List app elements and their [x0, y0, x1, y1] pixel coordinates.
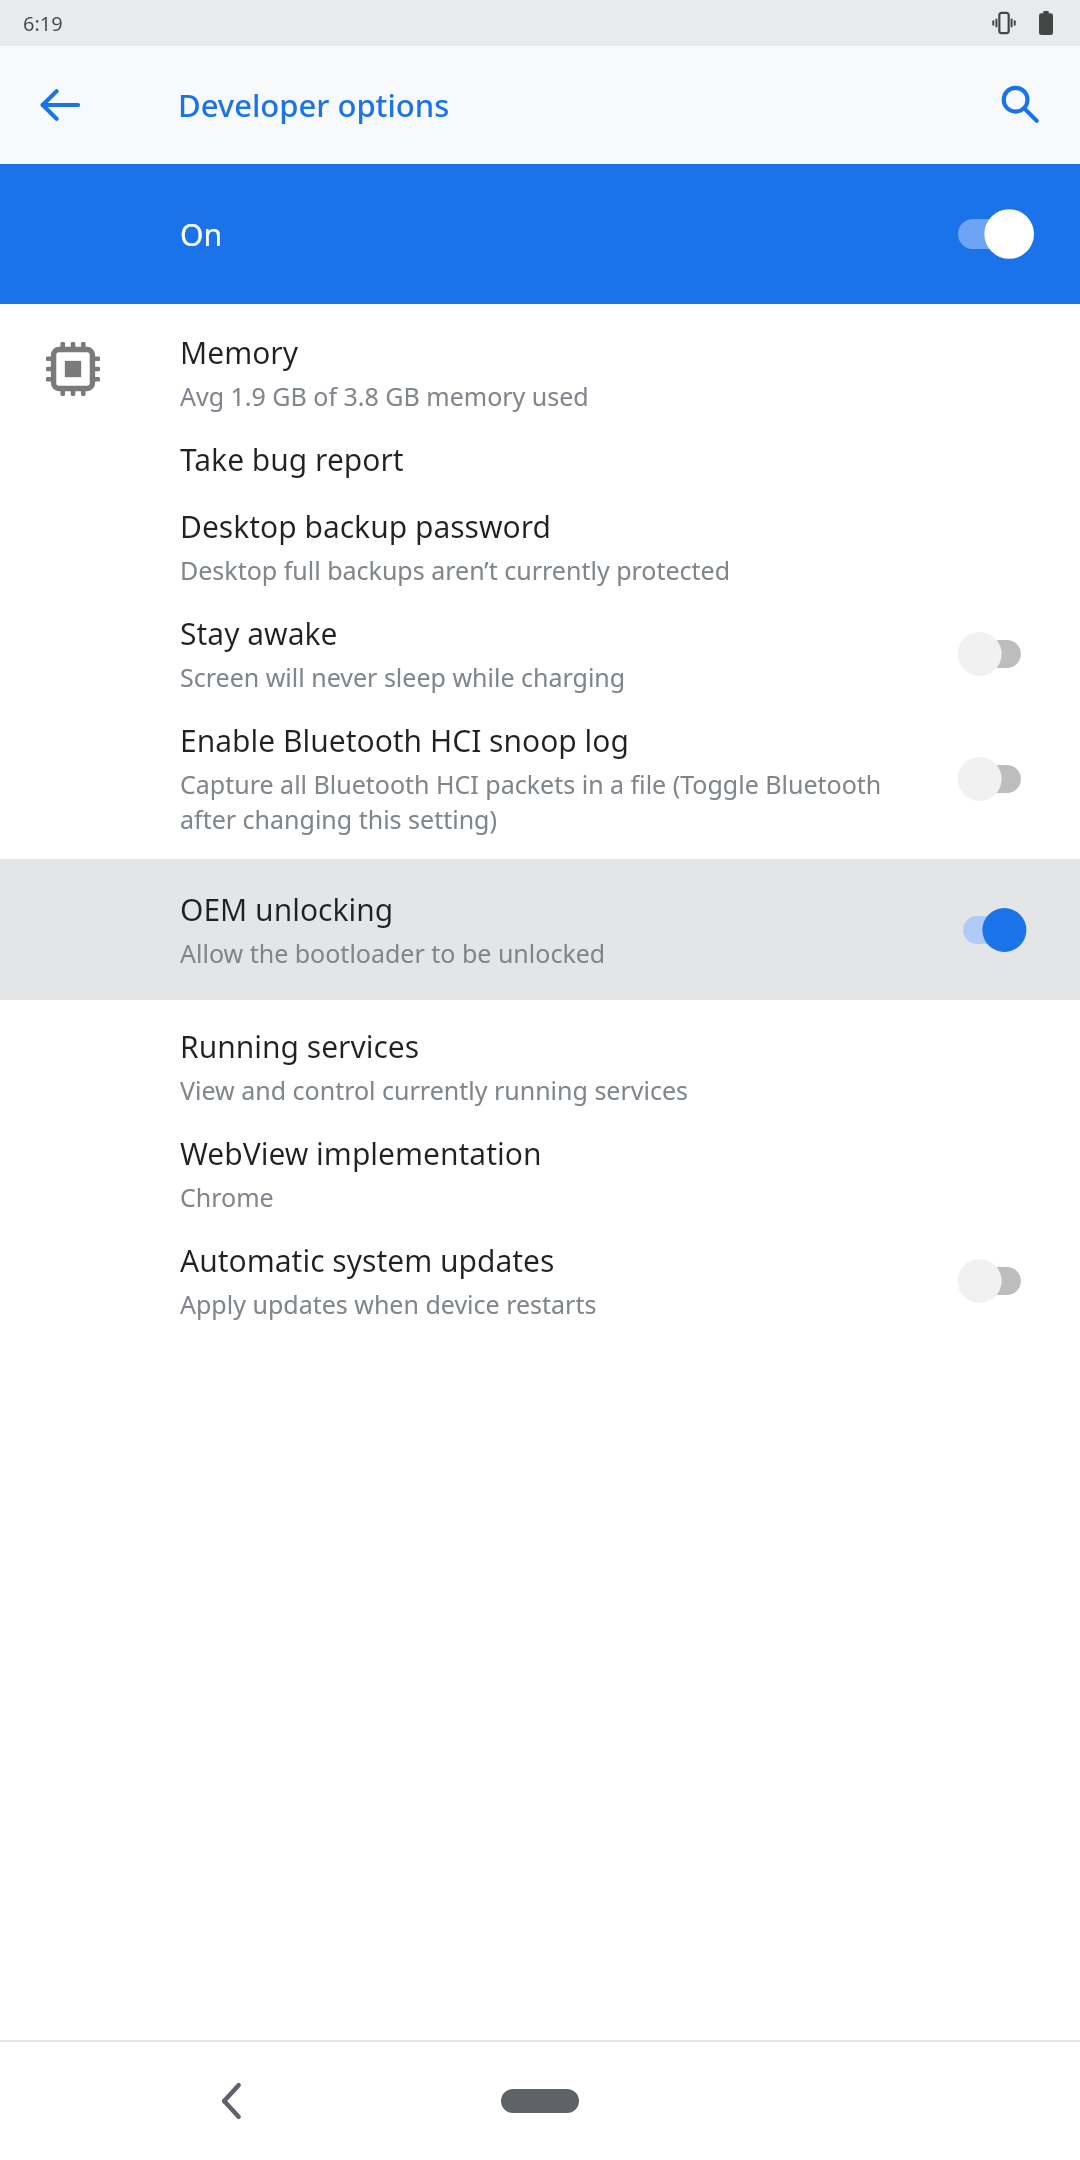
button[interactable]: Stay awake: [950, 624, 1034, 684]
button[interactable]: Running services: [0, 1000, 1080, 1107]
button[interactable]: WebView implementation: [0, 1107, 1080, 1214]
staticText: Enable Bluetooth HCI snoop log: [180, 720, 629, 761]
button[interactable]: Stay awake: [0, 587, 1080, 694]
staticText: Running services: [180, 1026, 420, 1067]
staticText: Avg 1.9 GB of 3.8 GB memory used: [180, 379, 589, 413]
button[interactable]: Desktop backup password: [0, 480, 1080, 587]
staticText: 6:19: [23, 10, 63, 37]
staticText: On: [180, 214, 958, 255]
staticText: OEM unlocking: [180, 889, 394, 930]
button[interactable]: OEM unlocking: [0, 859, 1080, 1000]
button[interactable]: Search: [980, 65, 1060, 145]
button[interactable]: Automatic system updates: [950, 1251, 1034, 1311]
staticText: WebView implementation: [180, 1133, 542, 1174]
button[interactable]: Back: [190, 2059, 274, 2143]
button[interactable]: OEM unlocking: [950, 900, 1034, 960]
staticText: Memory: [180, 332, 299, 373]
staticText: Stay awake: [180, 613, 338, 654]
staticText: Developer options: [178, 84, 450, 126]
button[interactable]: Enable Bluetooth HCI snoop log: [950, 749, 1034, 809]
button[interactable]: Home: [465, 2066, 615, 2136]
staticText: View and control currently running servi…: [180, 1073, 689, 1107]
staticText: Capture all Bluetooth HCI packets in a f…: [180, 767, 926, 837]
button[interactable]: Enable Bluetooth HCI snoop log: [0, 694, 1080, 837]
staticText: Take bug report: [180, 439, 404, 480]
staticText: Chrome: [180, 1180, 274, 1214]
staticText: Desktop full backups aren’t currently pr…: [180, 553, 731, 587]
button[interactable]: Automatic system updates: [0, 1214, 1080, 1321]
button[interactable]: Back: [20, 65, 100, 145]
staticText: Allow the bootloader to be unlocked: [180, 936, 606, 970]
button[interactable]: Take bug report: [0, 413, 1080, 480]
button[interactable]: Memory: [0, 330, 1080, 413]
staticText: Desktop backup password: [180, 506, 551, 547]
button[interactable]: On: [0, 164, 1080, 304]
staticText: Apply updates when device restarts: [180, 1287, 597, 1321]
staticText: Screen will never sleep while charging: [180, 660, 626, 694]
staticText: Automatic system updates: [180, 1240, 555, 1281]
